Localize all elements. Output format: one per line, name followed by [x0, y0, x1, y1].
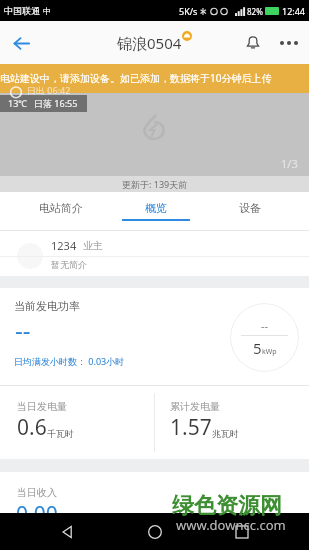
staticText: 兆瓦时	[212, 428, 239, 439]
staticText: 12:44	[282, 5, 306, 17]
staticText: 日均满发小时数： 0.03小时	[14, 355, 125, 367]
staticText: 日落 16:55	[34, 97, 78, 109]
staticText: 设备	[239, 201, 261, 215]
button[interactable]: Back	[0, 22, 42, 64]
staticText: 累计发电量	[170, 400, 220, 413]
staticText: www.downcc.com	[176, 516, 286, 534]
staticText: kWp	[262, 347, 277, 357]
button[interactable]: 电站简介	[0, 192, 122, 230]
staticText: 更新于: 139天前	[122, 178, 188, 190]
button[interactable]: 概览	[122, 192, 190, 230]
staticText: 82%	[247, 6, 263, 17]
staticText: 概览	[145, 201, 167, 215]
button[interactable]: Home	[134, 513, 176, 550]
staticText: 0.6	[17, 413, 47, 442]
staticText: 锦浪0504	[117, 33, 182, 53]
button[interactable]: 设备	[190, 192, 309, 230]
staticText: 暂无简介	[51, 259, 87, 270]
staticText: 当日发电量	[17, 400, 67, 413]
staticText: 5K/s	[179, 5, 198, 17]
button[interactable]: More options	[271, 25, 307, 61]
staticText: 中国联通	[4, 5, 40, 16]
staticText: 当前发电功率	[14, 299, 80, 313]
button[interactable]: 1234	[0, 231, 309, 276]
button[interactable]: 累计发电量	[170, 386, 309, 459]
staticText: --	[261, 318, 269, 333]
staticText: --	[15, 313, 31, 346]
staticText: 日出 06:42	[27, 84, 71, 96]
button[interactable]: Recent apps	[221, 513, 263, 550]
staticText: 5	[253, 338, 262, 358]
staticText: 0.00	[16, 500, 58, 513]
staticText: 1/3	[281, 156, 298, 171]
staticText: 千瓦时	[47, 428, 74, 439]
staticText: 13℃	[8, 97, 28, 109]
staticText: 1.57	[170, 413, 212, 442]
staticText: 电站建设中，请添加设备。如已添加，数据将于10分钟后上传	[0, 71, 272, 85]
staticText: 1234	[51, 238, 77, 253]
staticText: 业主	[83, 239, 103, 252]
staticText: 当日收入	[17, 486, 57, 499]
button[interactable]: 当日发电量	[17, 386, 171, 459]
staticText: 电站简介	[39, 201, 83, 215]
staticText: 绿色资源网	[172, 492, 282, 520]
staticText: 中	[43, 6, 51, 16]
button[interactable]: Notifications	[235, 25, 271, 61]
button[interactable]: Back	[46, 513, 88, 550]
